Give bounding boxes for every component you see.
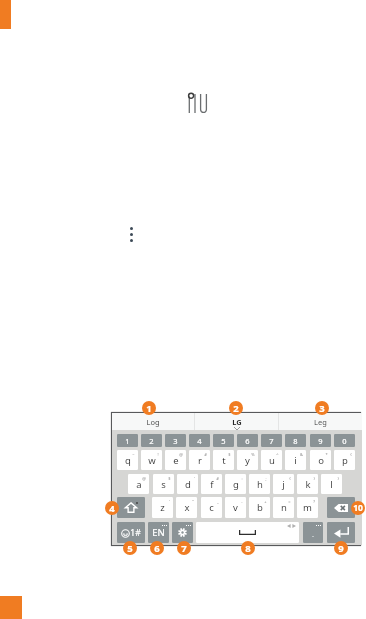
staticText: 1: [146, 402, 152, 415]
button[interactable]: s: [153, 474, 174, 494]
staticText: e: [173, 454, 179, 467]
staticText: ;: [265, 476, 267, 481]
button[interactable]: 4: [189, 434, 210, 447]
button[interactable]: r: [189, 450, 210, 470]
staticText: Leg: [314, 417, 327, 427]
staticText: -: [241, 499, 243, 504]
button[interactable]: LG: [195, 413, 278, 430]
button[interactable]: d: [177, 474, 198, 494]
button[interactable]: n: [273, 497, 294, 518]
staticText: 6: [154, 542, 160, 555]
button[interactable]: c: [201, 497, 222, 518]
button[interactable]: e: [165, 450, 186, 470]
button[interactable]: 2: [141, 434, 162, 447]
button[interactable]: 1: [117, 434, 138, 447]
button[interactable]: h: [249, 474, 270, 494]
staticText: r: [198, 454, 202, 467]
button[interactable]: b: [249, 497, 270, 518]
staticText: ': [169, 499, 170, 504]
staticText: LG: [232, 417, 242, 427]
staticText: 5: [221, 436, 226, 446]
staticText: 3: [319, 402, 325, 415]
staticText: p: [342, 454, 348, 467]
button[interactable]: Space: [196, 522, 299, 543]
staticText: #: [216, 476, 219, 481]
button[interactable]: Log: [112, 413, 194, 430]
button[interactable]: EN: [148, 522, 169, 543]
staticText: +: [264, 499, 267, 504]
staticText: o: [318, 454, 324, 467]
button[interactable]: 9: [310, 434, 331, 447]
button[interactable]: i: [285, 450, 306, 470]
button[interactable]: l: [321, 474, 342, 494]
staticText: x: [184, 501, 190, 514]
staticText: Log: [146, 417, 160, 427]
staticText: n: [281, 501, 287, 514]
staticText: %: [251, 452, 255, 457]
button[interactable]: m: [297, 497, 318, 518]
staticText: y: [245, 454, 250, 467]
staticText: f: [210, 478, 214, 491]
button[interactable]: g: [225, 474, 246, 494]
button[interactable]: Leg: [279, 413, 362, 430]
button[interactable]: 8: [285, 434, 306, 447]
staticText: ): [337, 476, 339, 481]
staticText: 5: [127, 542, 133, 555]
button[interactable]: Enter: [327, 522, 355, 543]
staticText: w: [148, 454, 156, 467]
staticText: 10: [353, 502, 363, 514]
button[interactable]: 6: [237, 434, 258, 447]
staticText: 7: [269, 436, 274, 446]
staticText: 8: [293, 436, 298, 446]
button[interactable]: j: [273, 474, 294, 494]
button[interactable]: Shift: [117, 497, 145, 518]
staticText: h: [257, 478, 263, 491]
button[interactable]: 3: [165, 434, 186, 447]
staticText: (: [289, 476, 291, 481]
staticText: 9: [338, 542, 344, 555]
button[interactable]: u: [261, 450, 282, 470]
staticText: (: [350, 452, 352, 457]
staticText: 6: [245, 436, 250, 446]
button[interactable]: [303, 522, 323, 543]
button[interactable]: Keyboard settings: [172, 522, 193, 543]
button[interactable]: Emoji and symbols: [117, 522, 145, 543]
staticText: g: [233, 478, 239, 491]
staticText: m: [303, 501, 312, 514]
staticText: 1: [125, 436, 130, 446]
button[interactable]: z: [152, 497, 173, 518]
staticText: s: [161, 478, 166, 491]
staticText: 4: [197, 436, 202, 446]
staticText: *: [325, 452, 328, 457]
button[interactable]: p: [334, 450, 355, 470]
button[interactable]: y: [237, 450, 258, 470]
button[interactable]: 5: [213, 434, 234, 447]
button[interactable]: 7: [261, 434, 282, 447]
button[interactable]: x: [176, 497, 197, 518]
button[interactable]: a: [128, 474, 149, 494]
staticText: 8: [245, 542, 251, 555]
button[interactable]: q: [117, 450, 138, 470]
button[interactable]: f: [201, 474, 222, 494]
staticText: ": [192, 499, 194, 504]
button[interactable]: v: [225, 497, 246, 518]
staticText: _: [217, 499, 219, 504]
staticText: 9: [318, 436, 323, 446]
button[interactable]: k: [297, 474, 318, 494]
staticText: t: [222, 454, 226, 467]
staticText: #: [204, 452, 207, 457]
button[interactable]: t: [213, 450, 234, 470]
button[interactable]: o: [310, 450, 331, 470]
button[interactable]: Backspace: [327, 497, 355, 518]
staticText: 2: [233, 402, 239, 415]
staticText: v: [233, 501, 238, 514]
staticText: ^: [276, 452, 279, 457]
staticText: u: [269, 454, 275, 467]
button[interactable]: 0: [334, 434, 355, 447]
staticText: z: [160, 501, 165, 514]
staticText: ~: [132, 452, 135, 457]
staticText: $: [168, 476, 171, 481]
staticText: ): [313, 476, 315, 481]
button[interactable]: w: [141, 450, 162, 470]
staticText: @: [179, 452, 183, 457]
